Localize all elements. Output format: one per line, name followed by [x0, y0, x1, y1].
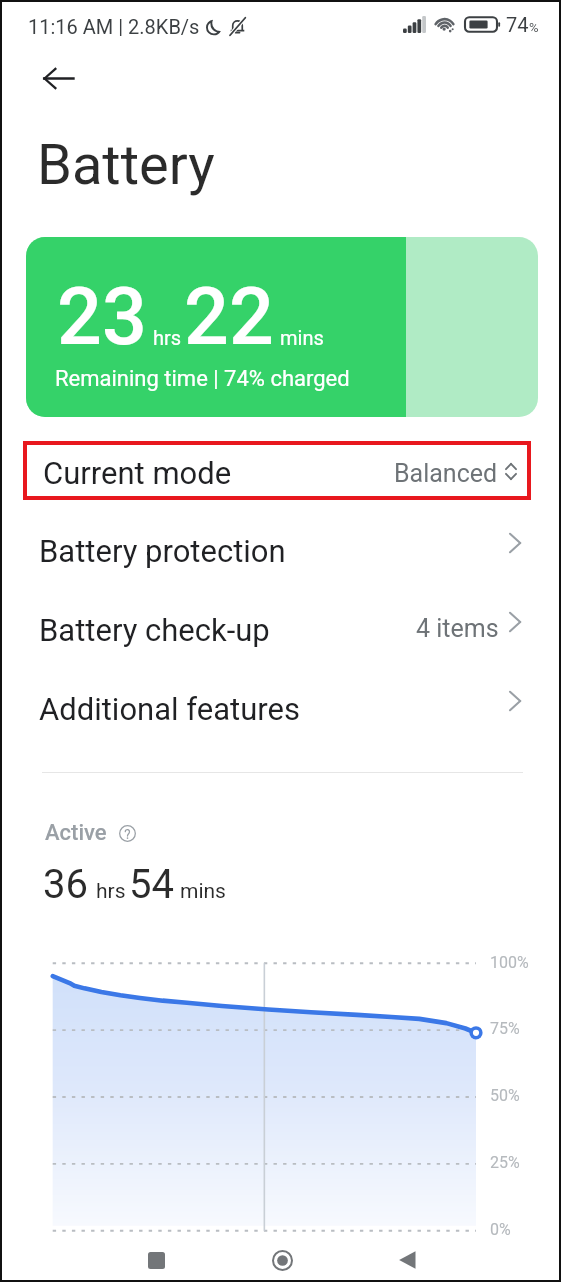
staticText: Battery: [37, 132, 215, 198]
staticText: Battery check-up: [39, 612, 270, 648]
button[interactable]: Current mode: [23, 441, 531, 500]
staticText: 100%: [490, 953, 529, 972]
staticText: 23: [57, 271, 147, 364]
staticText: 4 items: [416, 614, 499, 643]
staticText: 75%: [490, 1019, 520, 1038]
staticText: 54: [129, 861, 174, 908]
staticText: Remaining time | 74% charged: [55, 366, 350, 392]
staticText: 74: [506, 13, 529, 36]
staticText: hrs: [153, 326, 182, 349]
button[interactable]: Home: [254, 1239, 310, 1281]
button[interactable]: Info about active time: [116, 822, 139, 845]
button[interactable]: 23: [26, 237, 538, 417]
staticText: hrs: [96, 879, 126, 904]
staticText: 11:16 AM | 2.8KB/s: [28, 15, 200, 38]
button[interactable]: Recent apps: [128, 1239, 184, 1281]
staticText: %: [529, 20, 539, 35]
button[interactable]: Battery check-up: [2, 583, 561, 662]
staticText: mins: [180, 879, 226, 904]
button[interactable]: Battery protection: [2, 504, 561, 583]
button[interactable]: Back: [379, 1239, 435, 1281]
staticText: Active: [45, 820, 107, 846]
staticText: 50%: [490, 1086, 520, 1105]
button[interactable]: Additional features: [2, 662, 561, 741]
button[interactable]: Back: [28, 53, 88, 103]
staticText: 25%: [490, 1153, 520, 1172]
staticText: mins: [280, 326, 324, 349]
staticText: Balanced: [394, 459, 498, 488]
staticText: Additional features: [39, 691, 300, 727]
staticText: Battery protection: [39, 533, 286, 569]
staticText: 22: [184, 271, 274, 364]
staticText: Current mode: [43, 455, 232, 491]
staticText: 0%: [490, 1220, 511, 1239]
staticText: 36: [43, 861, 88, 908]
